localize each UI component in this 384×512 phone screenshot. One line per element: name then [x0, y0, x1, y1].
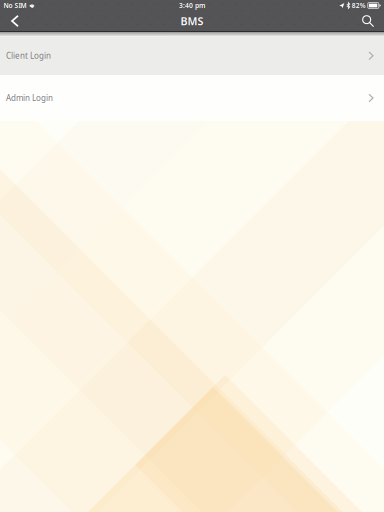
staticText: Client Login — [6, 50, 51, 61]
staticText: 3:40 pm — [179, 1, 205, 10]
staticText: BMS — [180, 14, 203, 28]
button[interactable]: Client Login — [0, 36, 384, 75]
staticText: No SIM — [3, 1, 26, 10]
staticText: 82% — [352, 1, 366, 10]
button[interactable]: Search — [346, 11, 384, 31]
staticText: Admin Login — [6, 93, 53, 103]
button[interactable]: Admin Login — [0, 75, 384, 121]
button[interactable]: Back — [0, 11, 34, 31]
